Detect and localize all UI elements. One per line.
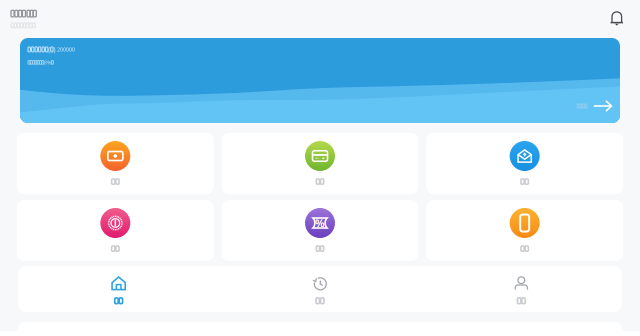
button[interactable]: Service: [426, 133, 623, 194]
button[interactable]: Notifications: [610, 10, 624, 27]
button[interactable]: Service: [222, 133, 418, 194]
button[interactable]: History: [219, 266, 421, 312]
staticText: 8%: [44, 59, 51, 66]
button[interactable]: Profile: [421, 266, 622, 312]
button[interactable]: Service: [222, 200, 418, 261]
button[interactable]: Promotion: [20, 38, 620, 123]
button[interactable]: Service: [426, 200, 623, 261]
staticText: (: [48, 45, 50, 54]
staticText: ): [53, 45, 55, 54]
button[interactable]: Home: [18, 266, 219, 312]
button[interactable]: Service: [17, 133, 214, 194]
button[interactable]: Service: [17, 200, 214, 261]
staticText: %: [315, 216, 325, 230]
staticText: 200000: [56, 46, 75, 53]
